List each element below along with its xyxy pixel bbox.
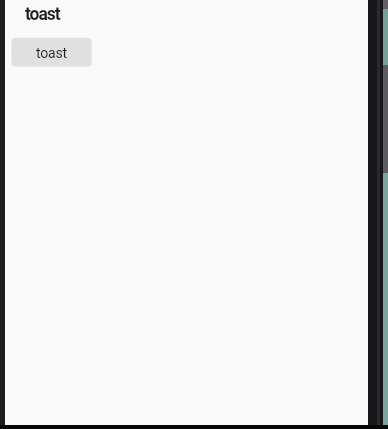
staticText: toast — [25, 4, 60, 25]
staticText: toast — [36, 45, 67, 61]
button[interactable]: toast — [12, 38, 91, 65]
